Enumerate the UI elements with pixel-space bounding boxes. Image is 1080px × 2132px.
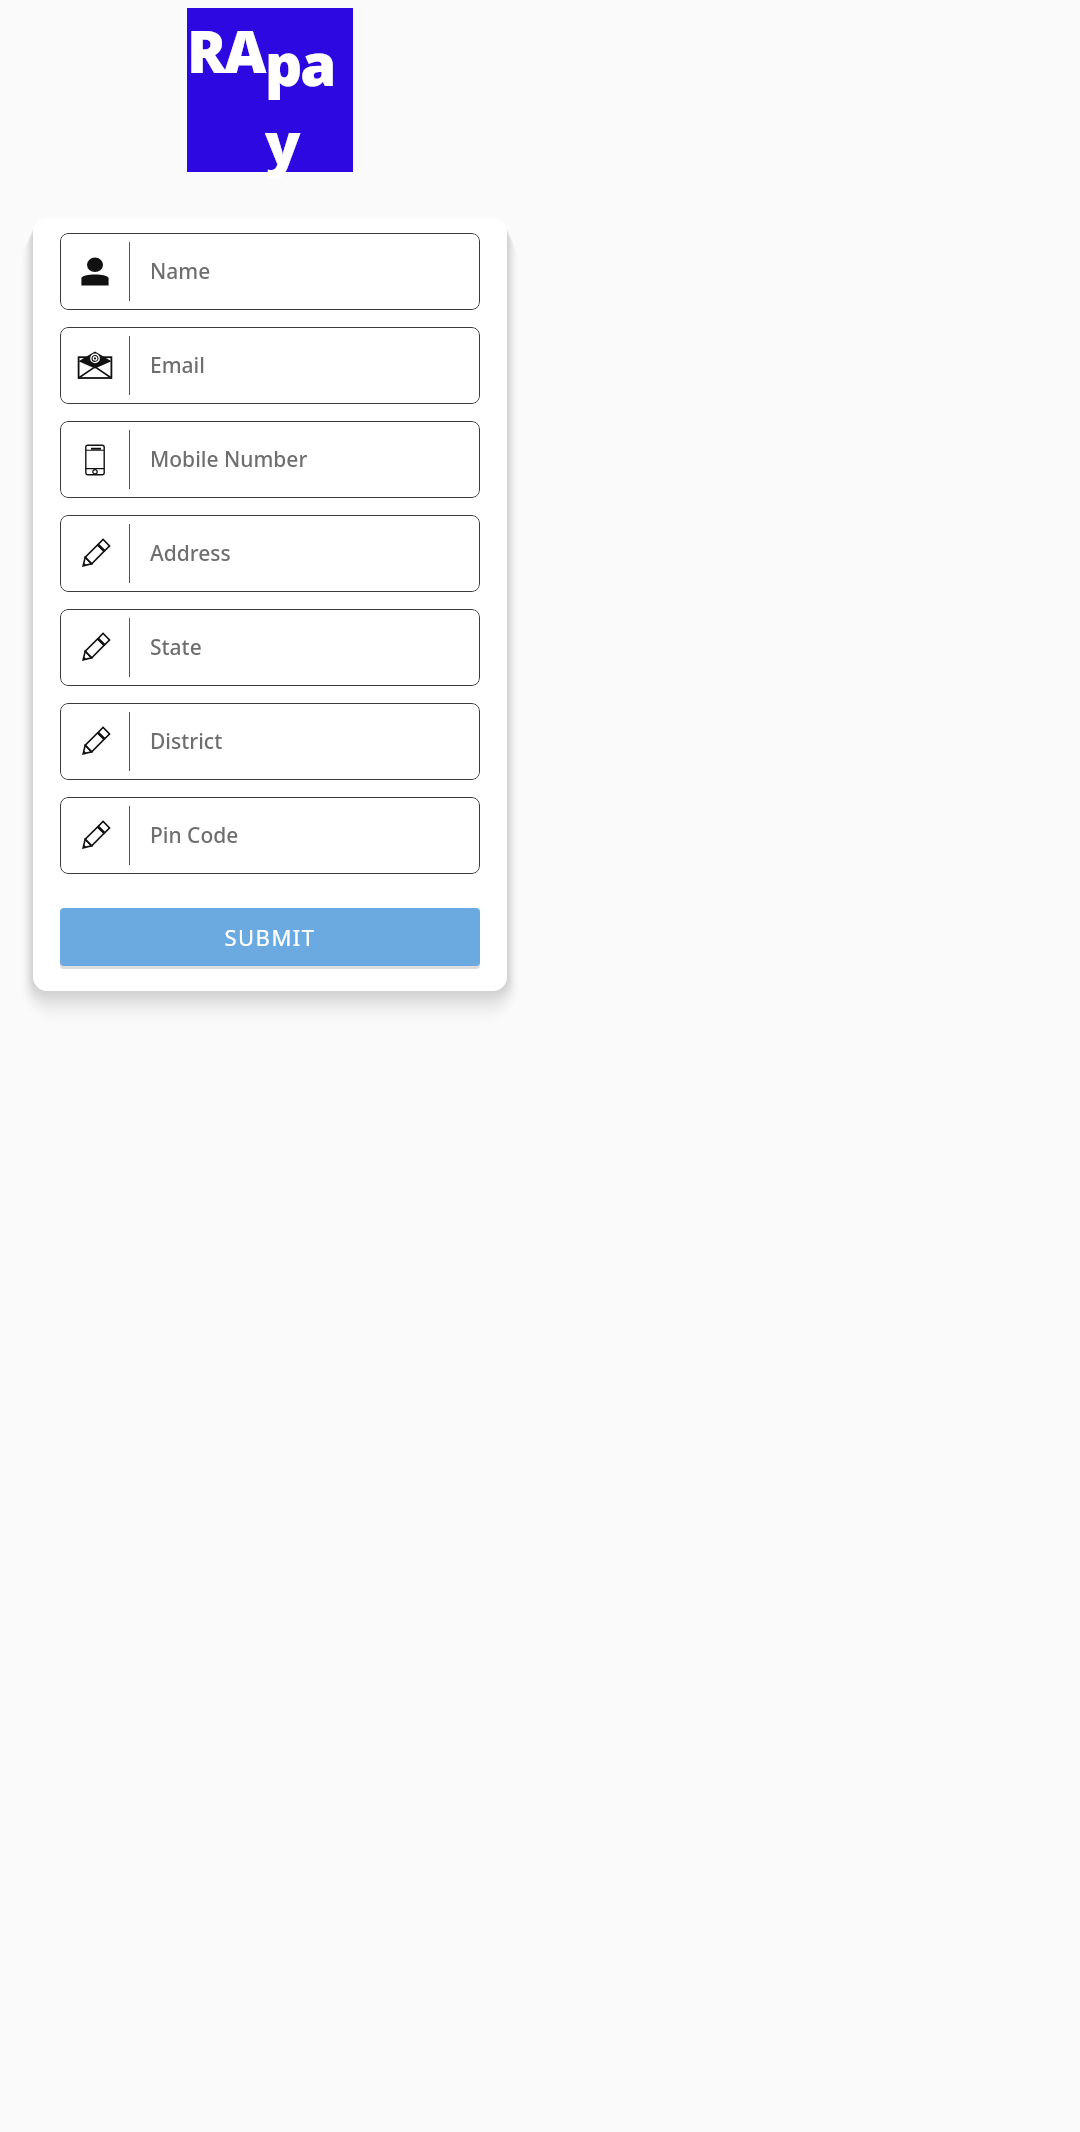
button[interactable]: Name (60, 233, 480, 310)
staticText: RA (187, 11, 265, 90)
button[interactable]: Pin Code (60, 797, 480, 874)
button[interactable]: SUBMIT (60, 908, 480, 966)
button[interactable]: RA (187, 8, 353, 172)
button[interactable]: Address (60, 515, 480, 592)
staticText: State (150, 633, 202, 662)
staticText: Pin Code (150, 821, 239, 850)
staticText: Mobile Number (150, 445, 308, 474)
button[interactable]: Mobile Number (60, 421, 480, 498)
staticText: Name (150, 257, 211, 286)
staticText: Address (150, 539, 231, 568)
button[interactable]: State (60, 609, 480, 686)
button[interactable]: Email (60, 327, 480, 404)
staticText: Email (150, 351, 205, 380)
staticText: pay (265, 24, 353, 182)
button[interactable]: District (60, 703, 480, 780)
staticText: District (150, 727, 223, 756)
staticText: SUBMIT (224, 922, 316, 952)
